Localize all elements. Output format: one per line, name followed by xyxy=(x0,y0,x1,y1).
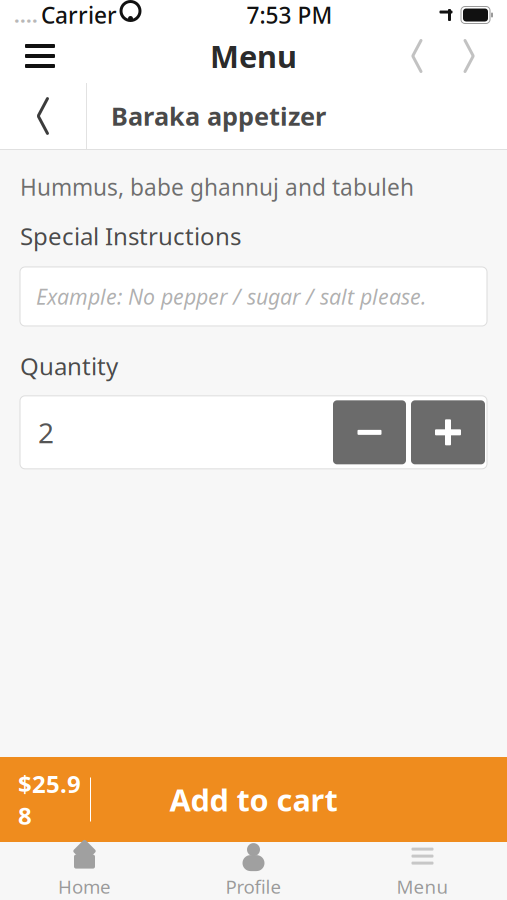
staticText: Add to cart xyxy=(169,779,337,820)
staticText: $25.98 xyxy=(18,768,81,831)
staticText: Menu xyxy=(210,36,297,76)
staticText: Carrier xyxy=(41,0,117,30)
button[interactable]: Add to cart xyxy=(0,757,507,842)
button[interactable]: Increase quantity xyxy=(411,400,485,464)
button[interactable]: Previous xyxy=(391,31,443,81)
button[interactable]: Back xyxy=(0,82,86,150)
button[interactable]: Home xyxy=(0,842,169,900)
staticText: Menu xyxy=(396,874,448,899)
button[interactable]: Profile xyxy=(169,842,338,900)
staticText: 7:53 PM xyxy=(246,0,332,30)
staticText: Special Instructions xyxy=(20,220,241,252)
button[interactable]: Next xyxy=(443,31,495,81)
staticText: Hummus, babe ghannuj and tabuleh xyxy=(20,172,414,202)
staticText: .... xyxy=(14,2,38,28)
button[interactable]: Decrease quantity xyxy=(333,400,406,464)
staticText: Home xyxy=(58,874,111,899)
staticText: 2 xyxy=(38,414,54,451)
staticText: Baraka appetizer xyxy=(111,99,326,133)
button[interactable]: Example: No pepper / sugar / salt please… xyxy=(20,267,487,326)
button[interactable]: Open menu xyxy=(12,31,68,81)
staticText: Quantity xyxy=(20,350,118,382)
button[interactable]: Menu xyxy=(338,842,507,900)
staticText: Profile xyxy=(225,874,281,899)
staticText: Example: No pepper / sugar / salt please… xyxy=(36,282,426,311)
